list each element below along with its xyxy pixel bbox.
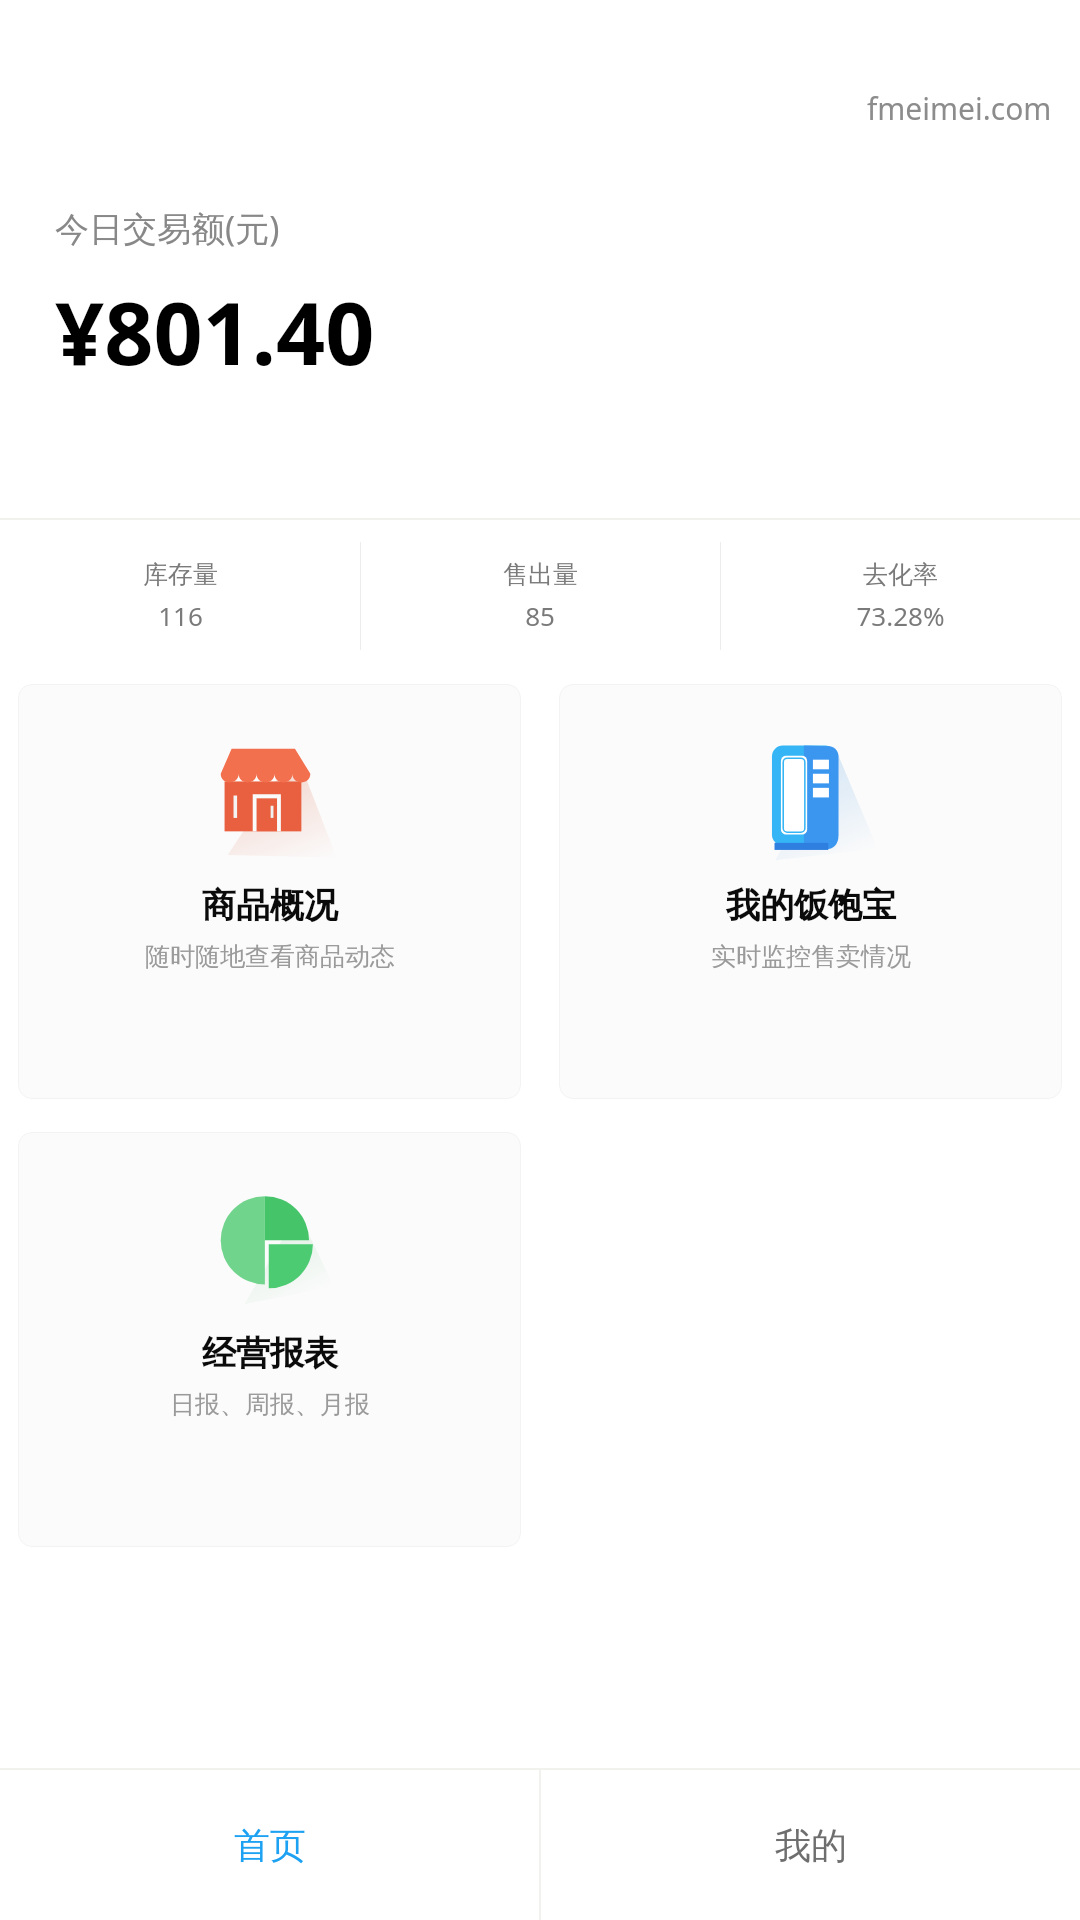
staticText: 116 xyxy=(158,598,203,633)
staticText: 我的 xyxy=(775,1823,847,1868)
button[interactable]: 去化率 xyxy=(720,559,1080,633)
button[interactable]: 商品概况 xyxy=(18,684,521,1099)
button[interactable]: 首页 xyxy=(0,1770,539,1920)
button[interactable]: 经营报表 xyxy=(18,1132,521,1547)
staticText: fmeimei.com xyxy=(867,88,1052,129)
staticText: 随时随地查看商品动态 xyxy=(145,941,395,972)
staticText: 今日交易额(元) xyxy=(55,205,280,251)
staticText: 我的饭饱宝 xyxy=(726,884,896,927)
button[interactable]: 我的饭饱宝 xyxy=(559,684,1062,1099)
button[interactable]: 我的 xyxy=(541,1770,1080,1920)
staticText: 日报、周报、月报 xyxy=(170,1389,370,1420)
staticText: 商品概况 xyxy=(202,884,338,927)
staticText: ¥801.40 xyxy=(55,273,375,390)
staticText: 经营报表 xyxy=(202,1332,338,1375)
staticText: 去化率 xyxy=(863,559,938,590)
staticText: 73.28% xyxy=(856,598,945,633)
staticText: 85 xyxy=(525,598,555,633)
staticText: 首页 xyxy=(234,1823,306,1868)
button[interactable]: 库存量 xyxy=(0,559,360,633)
staticText: 库存量 xyxy=(143,559,218,590)
staticText: 售出量 xyxy=(503,559,578,590)
button[interactable]: 售出量 xyxy=(360,559,720,633)
staticText: 实时监控售卖情况 xyxy=(711,941,911,972)
